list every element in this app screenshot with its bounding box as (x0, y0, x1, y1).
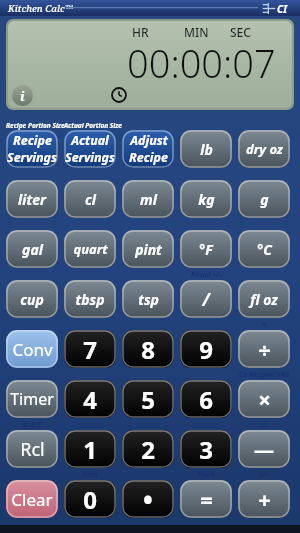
staticText: CI (277, 2, 287, 16)
staticText: / (202, 288, 210, 311)
staticText: +/– (259, 420, 269, 429)
staticText: 5 (141, 383, 155, 416)
button[interactable]: °F (180, 230, 232, 268)
button[interactable]: fl oz (238, 280, 290, 318)
staticText: cup (20, 290, 44, 309)
staticText: kg (198, 190, 215, 209)
staticText: Clr Recipe/ClrAll (239, 370, 289, 379)
staticText: Actual (71, 132, 109, 149)
button[interactable]: cl (64, 180, 116, 218)
staticText: • (143, 482, 153, 517)
staticText: HR (132, 24, 149, 40)
button[interactable]: Rcl (6, 430, 58, 468)
button[interactable]: quart (64, 230, 116, 268)
staticText: M+ (259, 470, 269, 479)
staticText: Dash (82, 470, 98, 479)
button[interactable]: Conv (6, 330, 58, 368)
button[interactable]: lb (180, 130, 232, 168)
staticText: pint (135, 240, 162, 259)
staticText: = (200, 484, 213, 514)
button[interactable]: Timer (6, 380, 58, 418)
staticText: cl (85, 190, 96, 209)
button[interactable]: dry oz (238, 130, 290, 168)
staticText: tbsp (75, 290, 105, 309)
staticText: i (20, 87, 25, 105)
button[interactable]: / (180, 280, 232, 318)
staticText: + (258, 484, 271, 514)
staticText: Pinch (198, 470, 215, 479)
button[interactable]: × (238, 380, 290, 418)
button[interactable]: • (122, 480, 174, 518)
staticText: 0 (83, 483, 97, 516)
button[interactable]: kg (180, 180, 232, 218)
staticText: dry oz (246, 140, 283, 158)
staticText: gal (22, 240, 43, 259)
button[interactable]: Adjust (122, 130, 174, 168)
staticText: 6 (199, 383, 213, 416)
staticText: °F (199, 240, 213, 259)
staticText: lb (200, 140, 213, 159)
staticText: Timer (10, 388, 54, 410)
button[interactable]: cup (6, 280, 58, 318)
staticText: Rcl (20, 437, 45, 462)
button[interactable]: g (238, 180, 290, 218)
button[interactable]: Timer (111, 87, 127, 103)
button[interactable]: °C (238, 230, 290, 268)
button[interactable]: ÷ (238, 330, 290, 368)
staticText: °C (257, 240, 272, 259)
button[interactable]: Actual (64, 130, 116, 168)
staticText: 3 (199, 433, 213, 466)
staticText: 2 (141, 433, 155, 466)
staticText: 8 (141, 333, 155, 366)
button[interactable]: 1 (64, 430, 116, 468)
button[interactable]: = (180, 480, 232, 518)
button[interactable]: 4 (64, 380, 116, 418)
staticText: tsp (138, 290, 159, 309)
button[interactable]: gal (6, 230, 58, 268)
button[interactable]: tsp (122, 280, 174, 318)
button[interactable]: ml (122, 180, 174, 218)
staticText: SEC (230, 24, 251, 40)
staticText: Servings (7, 149, 57, 166)
button[interactable]: liter (6, 180, 58, 218)
staticText: Recipe (13, 132, 52, 149)
staticText: MIN (184, 24, 209, 40)
button[interactable]: 7 (64, 330, 116, 368)
staticText: Kitchen Calc™ (8, 2, 73, 15)
button[interactable]: 6 (180, 380, 232, 418)
staticText: fl oz (250, 290, 278, 309)
staticText: g (260, 190, 269, 209)
button[interactable]: 9 (180, 330, 232, 368)
staticText: Adjust (130, 132, 168, 149)
staticText: 00:00:07 (127, 37, 276, 89)
staticText: 7 (83, 333, 97, 366)
button[interactable]: tbsp (64, 280, 116, 318)
staticText: Round +/– (191, 270, 222, 279)
button[interactable]: 0 (64, 480, 116, 518)
button[interactable]: Recipe (6, 130, 58, 168)
staticText: % (261, 320, 267, 329)
button[interactable]: pint (122, 230, 174, 268)
button[interactable]: Info (12, 85, 33, 106)
staticText: Recipe Portion Size (6, 121, 65, 130)
staticText: Conv (12, 338, 53, 361)
button[interactable]: 3 (180, 430, 232, 468)
staticText: M–R/C (22, 420, 42, 429)
button[interactable]: 5 (122, 380, 174, 418)
button[interactable]: + (238, 480, 290, 518)
staticText: — (254, 436, 274, 463)
staticText: 1 (83, 433, 97, 466)
staticText: Servings (65, 149, 115, 166)
staticText: Actual Portion Size (64, 121, 122, 130)
staticText: Clear (11, 488, 53, 511)
staticText: quart (73, 240, 108, 258)
button[interactable]: — (238, 430, 290, 468)
button[interactable]: 8 (122, 330, 174, 368)
staticText: 9 (199, 333, 213, 366)
staticText: ml (140, 190, 157, 209)
staticText: ÷ (258, 334, 271, 364)
staticText: × (258, 384, 271, 414)
staticText: 4 (83, 383, 97, 416)
button[interactable]: Clear (6, 480, 58, 518)
button[interactable]: 2 (122, 430, 174, 468)
